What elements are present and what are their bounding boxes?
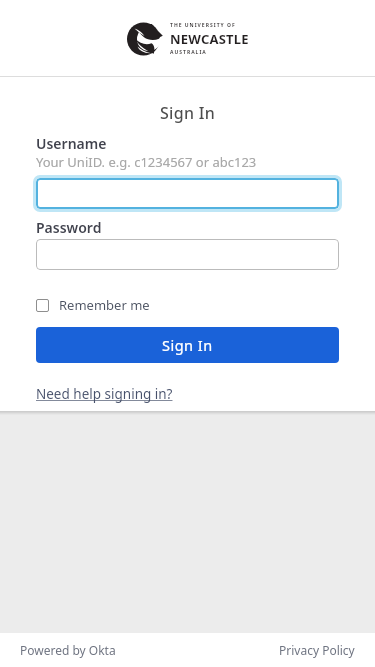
staticText: AUSTRALIA (170, 49, 207, 56)
staticText: Sign In (0, 102, 375, 124)
staticText: THE UNIVERSITY OF (170, 22, 236, 29)
button[interactable]: Need help signing in? (36, 385, 173, 403)
staticText: Password (36, 218, 102, 237)
staticText: Username (36, 134, 107, 153)
staticText: NEWCASTLE (170, 30, 249, 48)
staticText: Sign In (162, 335, 213, 355)
button[interactable]: Remember me (36, 296, 150, 314)
staticText: Remember me (59, 296, 150, 314)
button[interactable] (36, 239, 339, 270)
staticText: Powered by Okta (20, 642, 116, 658)
button[interactable] (36, 178, 339, 209)
button[interactable]: Sign In (36, 327, 339, 363)
button[interactable]: Privacy Policy (279, 642, 355, 658)
staticText: Your UniID. e.g. c1234567 or abc123 (36, 153, 257, 171)
